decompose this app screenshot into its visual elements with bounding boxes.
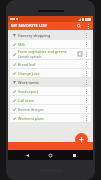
button[interactable]: Send report	[10, 87, 91, 95]
staticText: Bread loaf	[18, 62, 36, 67]
button[interactable]: Item options	[84, 71, 89, 76]
staticText: Work items	[18, 80, 39, 85]
button[interactable]: Recents	[70, 151, 79, 160]
staticText: Milk	[18, 42, 26, 47]
staticText: Review designs	[18, 107, 44, 112]
button[interactable]: Work items	[10, 78, 91, 86]
button[interactable]: Weekend plans	[10, 114, 91, 122]
button[interactable]: Item options	[84, 89, 89, 94]
staticText: Call team	[18, 98, 34, 103]
button[interactable]: Item options	[84, 52, 89, 57]
staticText: Grocery shopping	[18, 33, 51, 38]
staticText: Fresh vegetables and greens	[18, 49, 67, 54]
button[interactable]: Grocery shopping	[10, 31, 91, 39]
button[interactable]: Search	[76, 23, 82, 29]
staticText: MY FAVORITE LIST	[11, 23, 48, 29]
button[interactable]: Item options	[84, 116, 89, 121]
staticText: Send report	[18, 89, 38, 94]
button[interactable]: Add	[75, 133, 88, 146]
button[interactable]: Item options	[84, 33, 89, 38]
staticText: Carrots, spinach	[18, 55, 42, 59]
staticText: Weekend plans	[18, 116, 44, 121]
button[interactable]: More options	[85, 23, 91, 29]
staticText: Orange juice	[18, 71, 40, 76]
button[interactable]: Back	[23, 151, 32, 160]
button[interactable]: Home	[46, 151, 55, 160]
button[interactable]: Fresh vegetables and greens	[10, 49, 91, 59]
button[interactable]: Item options	[84, 98, 89, 103]
button[interactable]: Bread loaf	[10, 60, 91, 68]
button[interactable]: Item options	[84, 107, 89, 112]
button[interactable]: Call team	[10, 96, 91, 104]
button[interactable]: Item options	[84, 80, 89, 85]
button[interactable]: Item options	[84, 42, 89, 47]
button[interactable]: Milk	[10, 40, 91, 48]
button[interactable]: Orange juice	[10, 69, 91, 77]
button[interactable]: Review designs	[10, 105, 91, 113]
button[interactable]: Item options	[84, 62, 89, 67]
